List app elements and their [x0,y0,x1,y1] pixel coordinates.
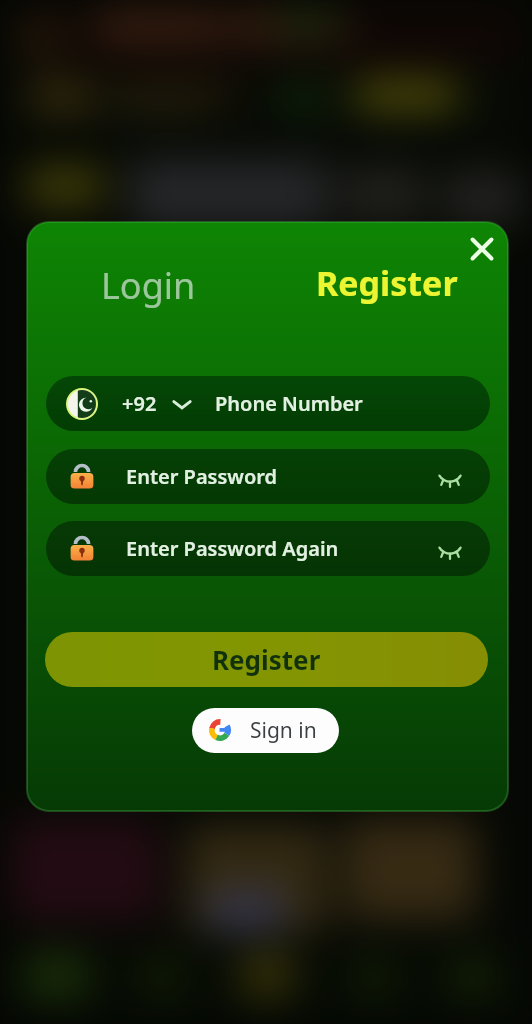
staticText: Enter Password [126,463,278,490]
staticText: Login [101,261,196,310]
button[interactable]: Close [460,227,504,271]
button[interactable]: Register [308,252,466,314]
button[interactable]: Show password [433,460,467,494]
button[interactable]: Show password again [433,532,467,566]
staticText: Sign in [250,716,317,745]
staticText: Enter Password Again [126,535,339,562]
staticText: Register [316,260,458,306]
button[interactable]: Enter Password Again [46,521,490,576]
button[interactable]: Login [93,253,204,318]
button[interactable]: Sign in [192,708,339,753]
button[interactable]: Register [45,632,488,687]
staticText: Phone Number [215,390,363,417]
button[interactable]: Enter Password [46,449,490,504]
staticText: +92 [122,390,157,417]
button[interactable]: +92 [46,376,490,431]
staticText: Register [212,642,321,677]
